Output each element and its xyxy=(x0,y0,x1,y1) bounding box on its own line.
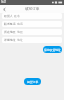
staticText: 联系电话 xyxy=(4,22,16,26)
button[interactable]: 详细地址 xyxy=(2,37,62,43)
staticText: 提交订单 xyxy=(27,80,39,84)
staticText: 9:41 xyxy=(1,0,7,4)
staticText: 保存收货地址 xyxy=(44,48,61,52)
button[interactable]: 提交订单 xyxy=(24,78,41,85)
button[interactable]: 保存收货地址 xyxy=(43,46,62,53)
staticText: 填写订单 xyxy=(25,7,40,12)
staticText: 收货人 xyxy=(4,14,13,18)
button[interactable]: 收货人 xyxy=(2,13,62,19)
staticText: 地区 xyxy=(17,30,23,34)
staticText: 电话 xyxy=(17,22,23,26)
staticText: 所在地区 xyxy=(4,30,16,34)
staticText: 地址 xyxy=(17,38,23,42)
button[interactable]: 联系电话 xyxy=(2,21,62,27)
staticText: 姓名 xyxy=(14,14,20,18)
staticText: 详细地址 xyxy=(4,38,16,42)
button[interactable]: Back xyxy=(0,5,8,13)
button[interactable]: 所在地区 xyxy=(2,29,62,35)
